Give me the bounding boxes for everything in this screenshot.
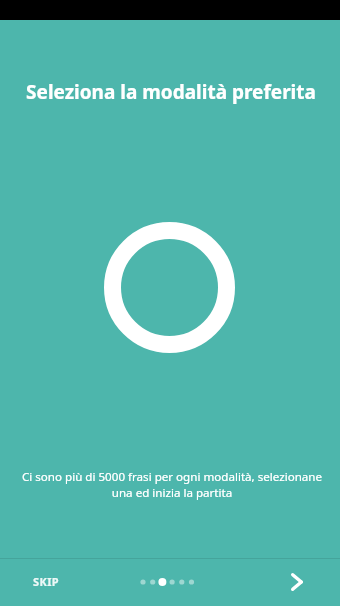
button[interactable]: SKIP [21, 564, 72, 599]
staticText: Ci sono più di 5000 frasi per ogni modal… [18, 469, 326, 500]
button[interactable]: Next [277, 562, 317, 602]
other: Page 3 of 6 [138, 575, 198, 589]
staticText: Seleziona la modalità preferita [1, 79, 340, 105]
staticText: SKIP [33, 574, 60, 589]
